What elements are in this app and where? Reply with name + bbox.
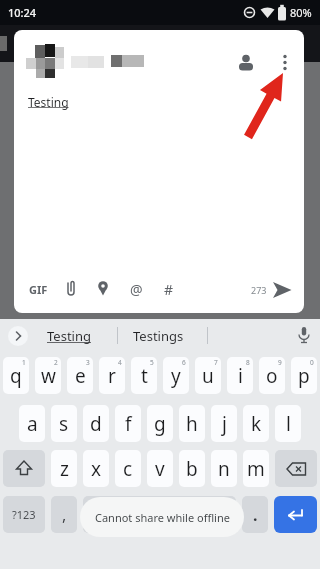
staticText: a	[27, 411, 38, 437]
staticText: y	[171, 363, 181, 389]
staticText: b	[186, 456, 198, 482]
staticText: f	[125, 411, 132, 437]
staticText: z	[60, 456, 69, 482]
staticText: 6	[182, 358, 186, 367]
staticText: w	[41, 363, 56, 389]
button[interactable]	[280, 52, 290, 74]
button[interactable]: GIF	[29, 282, 48, 297]
button[interactable]	[297, 326, 311, 345]
staticText: h	[186, 411, 198, 437]
staticText: c	[123, 456, 133, 482]
staticText: g	[154, 411, 166, 437]
staticText: o	[266, 363, 278, 389]
staticText: v	[155, 456, 165, 482]
button[interactable]: c	[115, 450, 141, 487]
staticText: 5	[150, 358, 154, 367]
staticText: @	[130, 280, 143, 298]
staticText: 9	[278, 358, 282, 367]
staticText: 80%	[290, 5, 312, 20]
staticText: 7	[214, 358, 218, 367]
button[interactable]	[238, 52, 254, 70]
staticText: t	[141, 363, 148, 389]
button[interactable]: t	[131, 357, 157, 394]
button[interactable]: @	[128, 280, 145, 298]
button[interactable]: e	[67, 357, 93, 394]
button[interactable]: p	[291, 357, 317, 394]
button[interactable]	[274, 496, 317, 533]
staticText: s	[59, 411, 69, 437]
staticText: x	[91, 456, 102, 482]
staticText: j	[222, 411, 227, 437]
staticText: .	[253, 504, 258, 526]
staticText: e	[75, 363, 86, 389]
button[interactable]: n	[211, 450, 237, 487]
button[interactable]	[64, 279, 78, 299]
button[interactable]: h	[179, 405, 205, 442]
button[interactable]: u	[195, 357, 221, 394]
button[interactable]	[3, 450, 45, 487]
button[interactable]: Testings	[133, 327, 184, 345]
button[interactable]: s	[51, 405, 77, 442]
button[interactable]: a	[19, 405, 45, 442]
button[interactable]: m	[243, 450, 269, 487]
button[interactable]: q	[3, 357, 29, 394]
staticText: 1	[22, 358, 26, 367]
staticText: Cannot share while offline	[95, 510, 230, 525]
staticText: 10:24	[8, 5, 37, 20]
button[interactable]	[8, 326, 28, 346]
staticText: Testing	[28, 94, 69, 110]
button[interactable]: l	[275, 405, 301, 442]
staticText: ,	[62, 504, 67, 526]
button[interactable]: v	[147, 450, 173, 487]
button[interactable]	[273, 281, 292, 299]
staticText: n	[218, 456, 230, 482]
staticText: q	[10, 363, 22, 389]
button[interactable]: y	[163, 357, 189, 394]
button[interactable]: x	[83, 450, 109, 487]
button[interactable]: #	[160, 280, 177, 298]
button[interactable]	[275, 450, 317, 487]
button[interactable]: ,	[51, 496, 77, 533]
button[interactable]: o	[259, 357, 285, 394]
staticText: k	[251, 411, 262, 437]
button[interactable]	[96, 280, 110, 298]
button[interactable]: ?123	[3, 496, 45, 533]
button[interactable]: z	[51, 450, 77, 487]
button[interactable]: .	[242, 496, 268, 533]
staticText: 2	[54, 358, 58, 367]
button[interactable]: k	[243, 405, 269, 442]
button[interactable]	[83, 496, 236, 533]
button[interactable]: r	[99, 357, 125, 394]
staticText: p	[298, 363, 310, 389]
staticText: 0	[310, 358, 314, 367]
staticText: d	[90, 411, 102, 437]
button[interactable]: i	[227, 357, 253, 394]
staticText: 8	[246, 358, 250, 367]
staticText: i	[238, 363, 243, 389]
button[interactable]: j	[211, 405, 237, 442]
staticText: m	[247, 456, 265, 482]
button[interactable]: w	[35, 357, 61, 394]
staticText: 4	[118, 358, 122, 367]
staticText: l	[286, 411, 291, 437]
staticText: u	[202, 363, 214, 389]
staticText: 3	[86, 358, 90, 367]
staticText: #	[164, 280, 174, 298]
button[interactable]: d	[83, 405, 109, 442]
staticText: ?123	[12, 507, 36, 522]
staticText: 273	[251, 284, 267, 296]
button[interactable]: b	[179, 450, 205, 487]
button[interactable]: g	[147, 405, 173, 442]
staticText: r	[108, 363, 116, 389]
button[interactable]: Testing	[47, 327, 91, 345]
button[interactable]: f	[115, 405, 141, 442]
